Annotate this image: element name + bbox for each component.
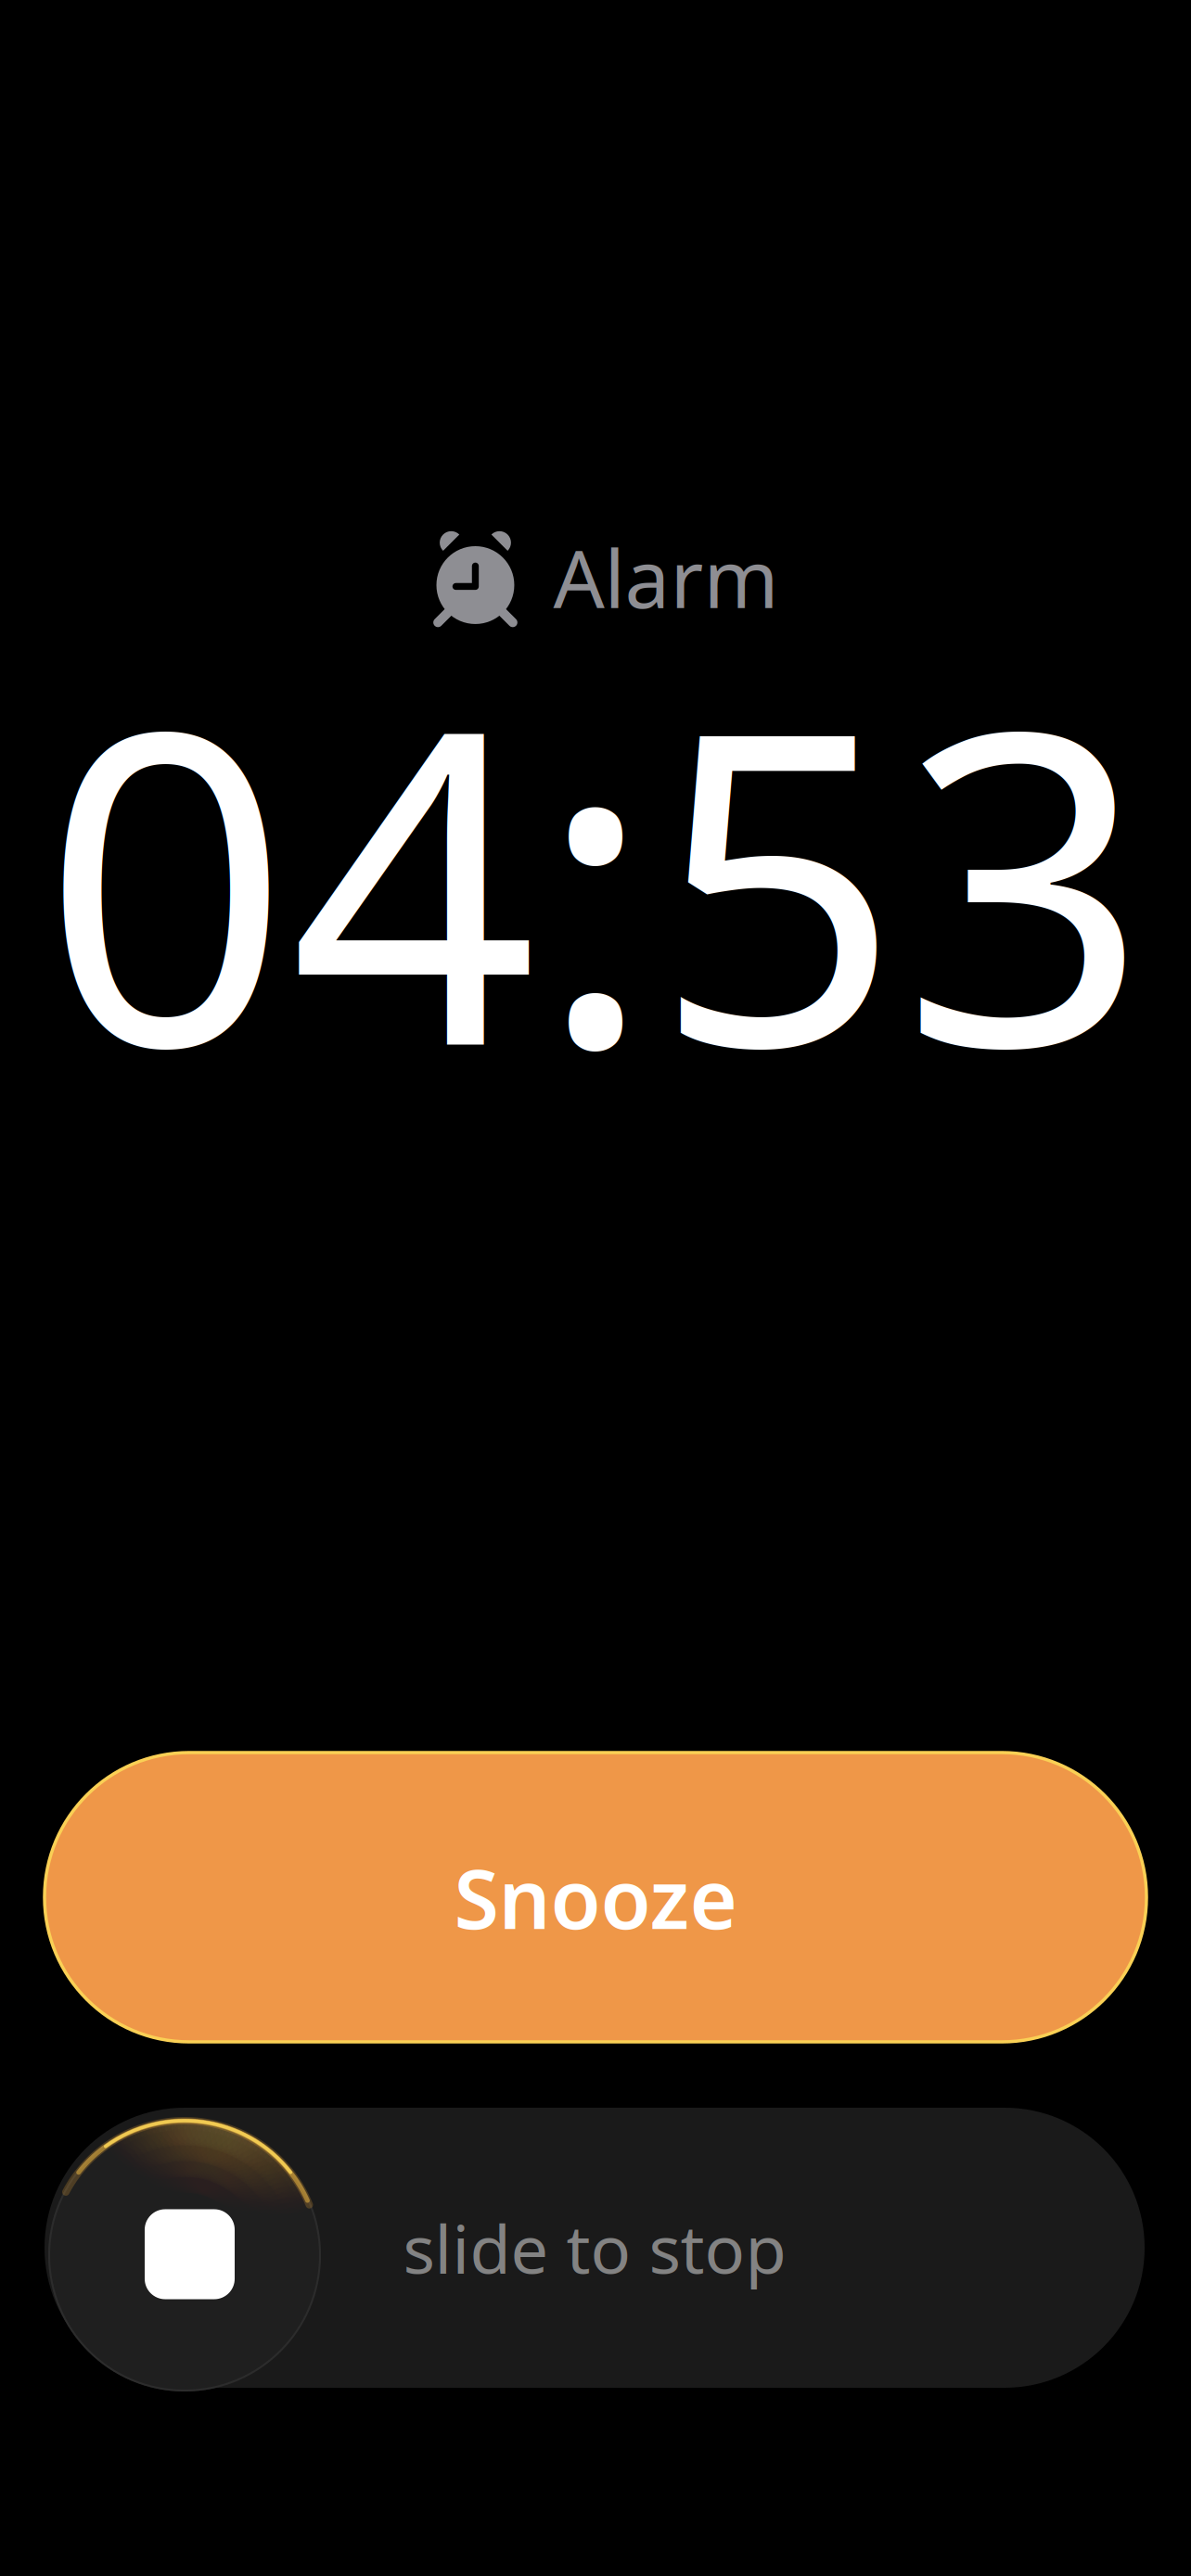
- staticText: 04:53: [42, 590, 1149, 1164]
- button[interactable]: slide to stop: [45, 2108, 1145, 2388]
- staticText: Alarm: [553, 523, 779, 630]
- button[interactable]: Snooze: [45, 1753, 1146, 2042]
- staticText: slide to stop: [403, 2203, 786, 2292]
- staticText: Snooze: [454, 1843, 737, 1951]
